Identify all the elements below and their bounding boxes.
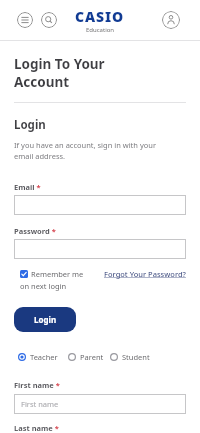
button[interactable]: CASIO bbox=[75, 7, 125, 34]
staticText: Login To Your Account bbox=[14, 55, 105, 91]
staticText: Parent bbox=[80, 352, 104, 362]
button[interactable]: Forgot Your Password? bbox=[104, 269, 186, 279]
staticText: Email * bbox=[14, 182, 41, 192]
button[interactable] bbox=[162, 11, 180, 29]
staticText: on next login bbox=[20, 281, 67, 291]
button[interactable]: Login bbox=[14, 307, 76, 332]
button[interactable]: First name bbox=[14, 394, 186, 414]
button[interactable] bbox=[14, 195, 186, 215]
button[interactable]: Teacher bbox=[18, 352, 58, 362]
button[interactable]: Student bbox=[110, 352, 150, 362]
staticText: First name * bbox=[14, 380, 60, 390]
button[interactable] bbox=[17, 12, 33, 28]
staticText: Student bbox=[122, 352, 150, 362]
staticText: Password * bbox=[14, 226, 56, 236]
button[interactable]: Parent bbox=[68, 352, 104, 362]
staticText: CASIO bbox=[75, 7, 125, 26]
staticText: Last name * bbox=[14, 423, 59, 433]
button[interactable] bbox=[14, 239, 186, 259]
staticText: Login bbox=[14, 117, 46, 133]
staticText: Remember me bbox=[31, 269, 84, 279]
button[interactable] bbox=[41, 12, 57, 28]
staticText: Login bbox=[34, 314, 57, 325]
staticText: Teacher bbox=[30, 352, 58, 362]
staticText: First name bbox=[21, 399, 59, 409]
staticText: Education bbox=[86, 26, 115, 34]
button[interactable]: Remember me bbox=[20, 269, 84, 279]
staticText: If you have an account, sign in with you… bbox=[14, 140, 156, 161]
